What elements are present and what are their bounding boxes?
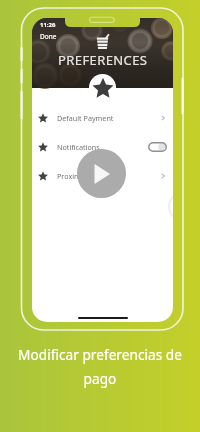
staticText: PREFERENCES bbox=[58, 51, 148, 69]
button[interactable]: Proximity bbox=[32, 161, 173, 190]
staticText: 11:26 bbox=[40, 21, 56, 29]
button[interactable]: Done bbox=[36, 30, 61, 43]
button[interactable]: Notifications toggle bbox=[148, 142, 167, 152]
button[interactable]: Notifications bbox=[32, 132, 173, 161]
button[interactable]: Coffee brand logo bbox=[95, 31, 110, 48]
staticText: Default Payment bbox=[57, 113, 114, 123]
button[interactable]: Default Payment bbox=[32, 103, 173, 132]
button[interactable]: Play video bbox=[77, 149, 126, 198]
staticText: Modificar preferencias de pago bbox=[10, 345, 190, 388]
staticText: Proximity bbox=[57, 171, 89, 181]
staticText: Done bbox=[40, 32, 57, 41]
staticText: Notifications bbox=[57, 142, 100, 152]
